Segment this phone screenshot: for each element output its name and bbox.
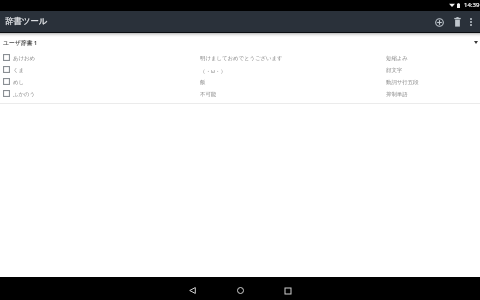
staticText: ふかのう xyxy=(13,91,36,98)
button[interactable]: Recents xyxy=(268,279,308,300)
button[interactable]: めし xyxy=(0,77,480,89)
button[interactable]: More options xyxy=(463,11,479,33)
button[interactable]: Back xyxy=(172,279,212,300)
staticText: あけおめ xyxy=(13,55,36,62)
staticText: 顔文字 xyxy=(386,67,403,74)
staticText: 抑制単語 xyxy=(386,91,408,98)
staticText: 辞書ツール xyxy=(5,16,48,27)
staticText: ユーザ辞書 1 xyxy=(3,39,38,47)
staticText: 動詞サ行五段 xyxy=(386,79,419,86)
button[interactable]: あけおめ xyxy=(0,53,480,65)
staticText: めし xyxy=(13,79,25,86)
button[interactable]: Delete xyxy=(449,11,466,33)
button[interactable]: ふかのう xyxy=(0,89,480,101)
button[interactable]: Home xyxy=(220,279,260,300)
staticText: （・ω・） xyxy=(200,67,226,74)
staticText: 飯 xyxy=(200,79,206,86)
staticText: 14:39 xyxy=(464,1,480,9)
button[interactable]: Dropdown xyxy=(470,36,480,48)
button[interactable]: Add xyxy=(430,11,448,33)
staticText: くま xyxy=(13,67,25,74)
staticText: 不可能 xyxy=(200,91,217,98)
staticText: 短縮よみ xyxy=(386,55,408,62)
staticText: 明けましておめでとうございます xyxy=(200,55,283,62)
button[interactable]: くま xyxy=(0,65,480,77)
